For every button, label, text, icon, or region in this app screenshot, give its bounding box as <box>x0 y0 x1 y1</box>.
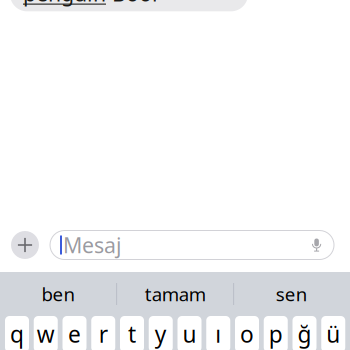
button[interactable]: u <box>177 316 201 350</box>
staticText: e <box>68 319 81 349</box>
button[interactable]: w <box>34 316 58 350</box>
staticText: ü <box>326 319 340 349</box>
staticText: r <box>99 319 108 349</box>
staticText: penguin Bool <box>23 0 158 7</box>
button[interactable]: Dictate <box>311 237 322 252</box>
staticText: tamam <box>145 282 206 306</box>
staticText: u <box>182 319 196 349</box>
button[interactable]: e <box>62 316 86 350</box>
staticText: y <box>155 319 167 349</box>
staticText: t <box>128 319 136 349</box>
button[interactable]: ben <box>0 272 117 316</box>
staticText: q <box>10 319 24 349</box>
button[interactable]: y <box>149 316 173 350</box>
button[interactable]: ı <box>206 316 230 350</box>
staticText: ben <box>41 282 75 306</box>
staticText: ı <box>215 319 221 349</box>
button[interactable]: o <box>235 316 259 350</box>
button[interactable]: q <box>5 316 29 350</box>
staticText: o <box>240 319 254 349</box>
staticText: ğ <box>297 319 311 349</box>
button[interactable]: r <box>91 316 115 350</box>
staticText: sen <box>276 282 308 306</box>
staticText: p <box>269 319 283 349</box>
staticText: Mesaj <box>63 231 122 259</box>
button[interactable]: ü <box>321 316 345 350</box>
button[interactable]: t <box>120 316 144 350</box>
button[interactable]: sen <box>233 272 350 316</box>
button[interactable]: Add attachment <box>11 231 39 259</box>
button[interactable]: p <box>264 316 288 350</box>
button[interactable]: ğ <box>292 316 316 350</box>
button[interactable]: tamam <box>117 272 233 316</box>
staticText: w <box>37 319 55 349</box>
